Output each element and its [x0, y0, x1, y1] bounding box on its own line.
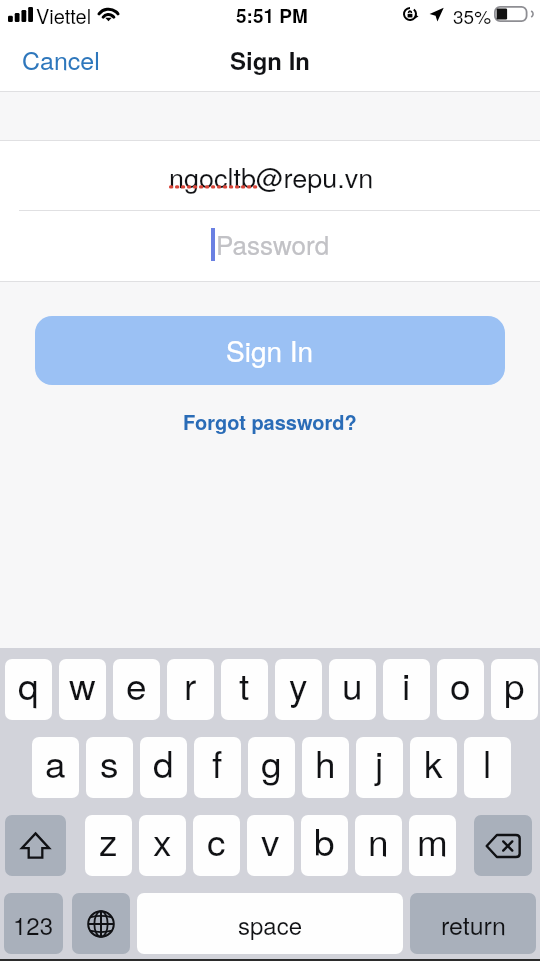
staticText: Cancel	[22, 41, 100, 77]
button[interactable]: Backspace	[474, 815, 532, 876]
staticText: 35%	[453, 2, 492, 29]
button[interactable]: n	[355, 815, 402, 876]
staticText: n	[368, 815, 389, 867]
staticText: o	[450, 659, 471, 711]
button[interactable]	[0, 141, 540, 210]
staticText: j	[375, 737, 384, 789]
staticText: l	[483, 737, 492, 789]
staticText: s	[100, 737, 119, 789]
button[interactable]: Shift	[5, 815, 66, 876]
button[interactable]: z	[85, 815, 132, 876]
staticText: space	[238, 907, 303, 941]
staticText: 123	[13, 907, 54, 941]
button[interactable]: return	[410, 893, 536, 954]
staticText: Forgot password?	[183, 407, 357, 436]
button[interactable]: b	[301, 815, 348, 876]
button[interactable]: g	[248, 737, 295, 798]
staticText: f	[212, 737, 223, 789]
staticText: v	[261, 815, 280, 867]
button[interactable]: s	[86, 737, 133, 798]
staticText: h	[315, 737, 336, 789]
staticText: r	[184, 659, 197, 711]
button[interactable]: f	[194, 737, 241, 798]
button[interactable]: h	[302, 737, 349, 798]
button[interactable]: j	[356, 737, 403, 798]
staticText: e	[126, 659, 147, 711]
button[interactable]: r	[167, 659, 214, 720]
staticText: z	[99, 815, 118, 867]
staticText: t	[239, 659, 250, 711]
button[interactable]: o	[437, 659, 484, 720]
staticText: Password	[216, 225, 330, 262]
staticText: u	[342, 659, 363, 711]
staticText: c	[207, 815, 226, 867]
staticText: Sign In	[230, 43, 311, 77]
button[interactable]: x	[139, 815, 186, 876]
staticText: ngocltb@repu.vn	[169, 157, 374, 196]
staticText: k	[424, 737, 443, 789]
staticText: d	[153, 737, 174, 789]
button[interactable]: space	[137, 893, 403, 954]
button[interactable]: i	[383, 659, 430, 720]
button[interactable]: q	[5, 659, 52, 720]
button[interactable]: e	[113, 659, 160, 720]
staticText: 5:51 PM	[236, 2, 308, 29]
staticText: p	[504, 659, 525, 711]
button[interactable]: Forgot password?	[177, 404, 363, 438]
staticText: w	[69, 659, 96, 711]
staticText: i	[402, 659, 411, 711]
staticText: q	[18, 659, 39, 711]
staticText: Viettel	[36, 1, 92, 30]
button[interactable]: Change keyboard	[72, 893, 130, 954]
button[interactable]: v	[247, 815, 294, 876]
button[interactable]: Sign In	[35, 316, 505, 385]
button[interactable]: d	[140, 737, 187, 798]
button[interactable]: 123	[4, 893, 63, 954]
staticText: return	[441, 906, 506, 942]
button[interactable]: p	[491, 659, 538, 720]
staticText: y	[289, 659, 308, 711]
button[interactable]: t	[221, 659, 268, 720]
button[interactable]: Cancel	[10, 38, 112, 80]
staticText: x	[153, 815, 172, 867]
button[interactable]	[0, 211, 540, 281]
button[interactable]: a	[32, 737, 79, 798]
button[interactable]: y	[275, 659, 322, 720]
staticText: g	[261, 737, 282, 789]
staticText: a	[45, 737, 66, 789]
button[interactable]: l	[464, 737, 511, 798]
staticText: Sign In	[226, 330, 314, 370]
button[interactable]: k	[410, 737, 457, 798]
button[interactable]: m	[409, 815, 456, 876]
button[interactable]: w	[59, 659, 106, 720]
button[interactable]: c	[193, 815, 240, 876]
button[interactable]: u	[329, 659, 376, 720]
staticText: m	[417, 815, 448, 867]
staticText: b	[314, 815, 335, 867]
